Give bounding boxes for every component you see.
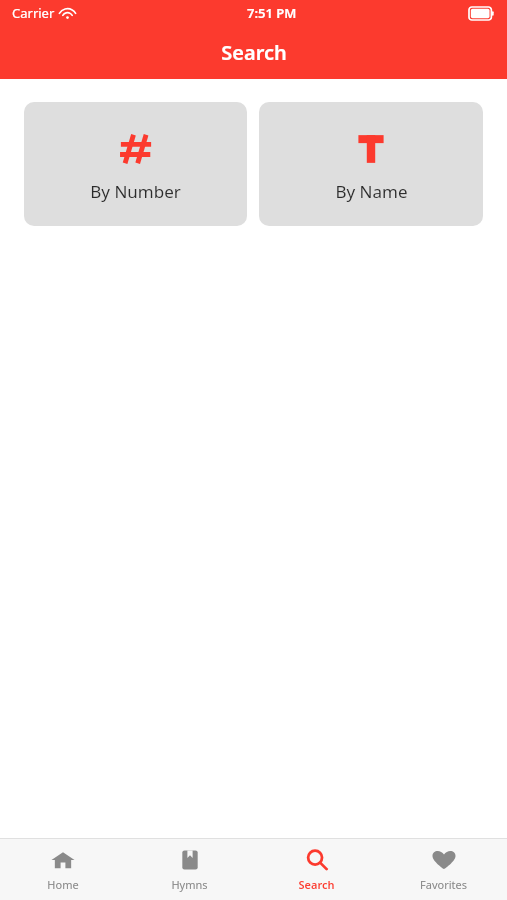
button[interactable]: Hymns: [126, 838, 253, 900]
button[interactable]: Favorites: [380, 838, 507, 900]
staticText: Home: [47, 877, 79, 892]
button[interactable]: Search: [253, 838, 380, 900]
staticText: Hymns: [171, 877, 208, 892]
staticText: Search: [221, 39, 287, 66]
button[interactable]: By Number: [24, 102, 247, 226]
staticText: Favorites: [420, 877, 467, 892]
staticText: 7:51 PM: [247, 4, 297, 22]
staticText: By Number: [90, 180, 181, 203]
staticText: Carrier: [12, 4, 55, 22]
button[interactable]: By Name: [259, 102, 483, 226]
staticText: Search: [298, 877, 335, 892]
button[interactable]: Home: [0, 838, 126, 900]
staticText: By Name: [335, 180, 408, 203]
